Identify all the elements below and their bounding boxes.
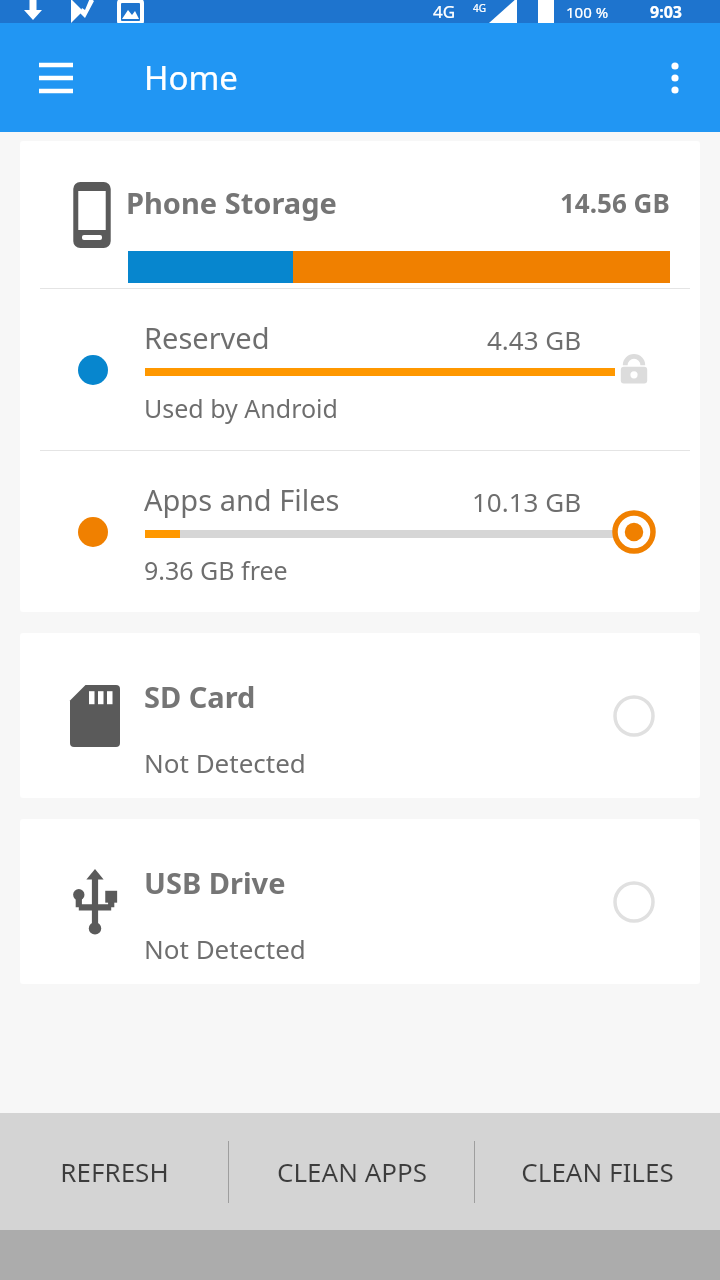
button[interactable]: Apps and Files selected xyxy=(606,504,662,560)
staticText: 14.56 GB xyxy=(560,185,670,220)
button[interactable]: CLEAN APPS xyxy=(229,1113,474,1230)
button[interactable]: Reserved storage is locked xyxy=(606,342,662,398)
staticText: 9.36 GB free xyxy=(144,553,288,587)
staticText: SD Card xyxy=(144,677,256,716)
staticText: Reserved xyxy=(144,318,270,357)
button[interactable]: Reserved xyxy=(20,289,700,450)
staticText: CLEAN APPS xyxy=(277,1154,427,1189)
button[interactable]: SD Card xyxy=(20,633,700,798)
button[interactable]: Open navigation menu xyxy=(22,44,90,112)
button[interactable]: CLEAN FILES xyxy=(475,1113,720,1230)
button[interactable]: Phone Storage xyxy=(20,141,700,288)
staticText: 100 % xyxy=(566,2,609,22)
button[interactable]: Select USB Drive xyxy=(606,874,662,930)
button[interactable]: More options xyxy=(644,47,706,109)
staticText: Not Detected xyxy=(144,745,306,780)
staticText: Not Detected xyxy=(144,931,306,966)
button[interactable]: USB Drive xyxy=(20,819,700,984)
button[interactable]: REFRESH xyxy=(0,1113,228,1230)
staticText: Apps and Files xyxy=(144,480,340,519)
staticText: 4.43 GB xyxy=(487,322,582,357)
staticText: USB Drive xyxy=(144,863,286,902)
staticText: 9:03 xyxy=(650,1,682,23)
button[interactable]: Select SD Card xyxy=(606,688,662,744)
staticText: 4G xyxy=(433,0,456,22)
staticText: Phone Storage xyxy=(126,183,337,222)
staticText: 10.13 GB xyxy=(472,484,582,519)
staticText: 4G xyxy=(473,1,486,15)
staticText: Home xyxy=(144,55,238,100)
staticText: Used by Android xyxy=(144,391,338,425)
button[interactable]: Apps and Files xyxy=(20,451,700,612)
staticText: REFRESH xyxy=(60,1154,169,1189)
staticText: CLEAN FILES xyxy=(521,1154,674,1189)
